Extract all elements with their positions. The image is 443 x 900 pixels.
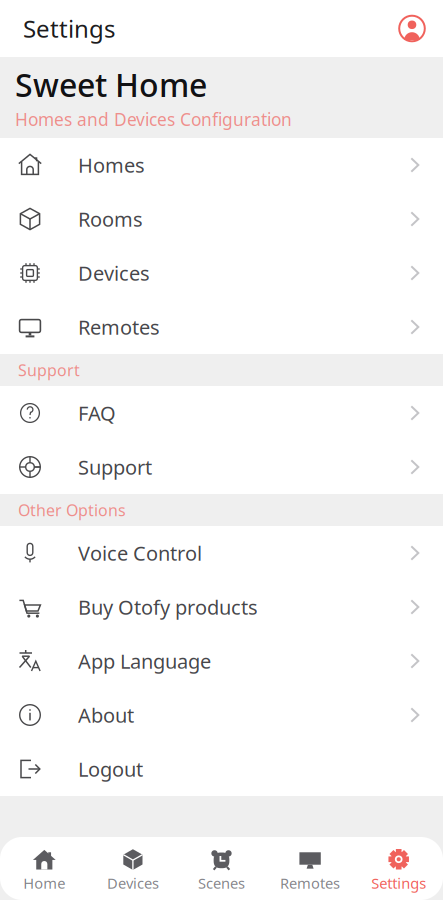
button[interactable]: Home <box>0 834 89 900</box>
staticText: FAQ <box>78 400 116 426</box>
button[interactable]: Voice Control <box>0 526 443 580</box>
staticText: About <box>78 702 134 728</box>
staticText: Logout <box>78 756 143 782</box>
button[interactable]: About <box>0 688 443 742</box>
staticText: Support <box>78 454 152 480</box>
staticText: Support <box>18 359 80 381</box>
staticText: Homes and Devices Configuration <box>15 108 292 131</box>
staticText: Remotes <box>78 314 160 340</box>
staticText: Home <box>23 873 65 893</box>
button[interactable]: Scenes <box>177 834 266 900</box>
button[interactable]: Remotes <box>0 300 443 354</box>
staticText: Scenes <box>198 873 245 893</box>
button[interactable]: Devices <box>0 246 443 300</box>
staticText: Rooms <box>78 206 143 232</box>
button[interactable]: Account <box>398 14 426 42</box>
staticText: Homes <box>78 152 145 178</box>
button[interactable]: Logout <box>0 742 443 796</box>
staticText: Other Options <box>18 499 126 521</box>
staticText: Remotes <box>280 873 340 893</box>
button[interactable]: Remotes <box>266 834 354 900</box>
button[interactable]: App Language <box>0 634 443 688</box>
button[interactable]: Support <box>0 440 443 494</box>
staticText: Devices <box>78 260 150 286</box>
staticText: App Language <box>78 648 211 674</box>
staticText: Settings <box>371 873 426 893</box>
staticText: Sweet Home <box>15 63 207 106</box>
staticText: Voice Control <box>78 540 202 566</box>
button[interactable]: Devices <box>89 834 177 900</box>
staticText: Buy Otofy products <box>78 594 258 620</box>
staticText: Devices <box>107 873 159 893</box>
button[interactable]: Homes <box>0 138 443 192</box>
button[interactable]: Buy Otofy products <box>0 580 443 634</box>
button[interactable]: Rooms <box>0 192 443 246</box>
staticText: Settings <box>23 13 115 44</box>
button[interactable]: FAQ <box>0 386 443 440</box>
button[interactable]: Settings <box>354 834 443 900</box>
